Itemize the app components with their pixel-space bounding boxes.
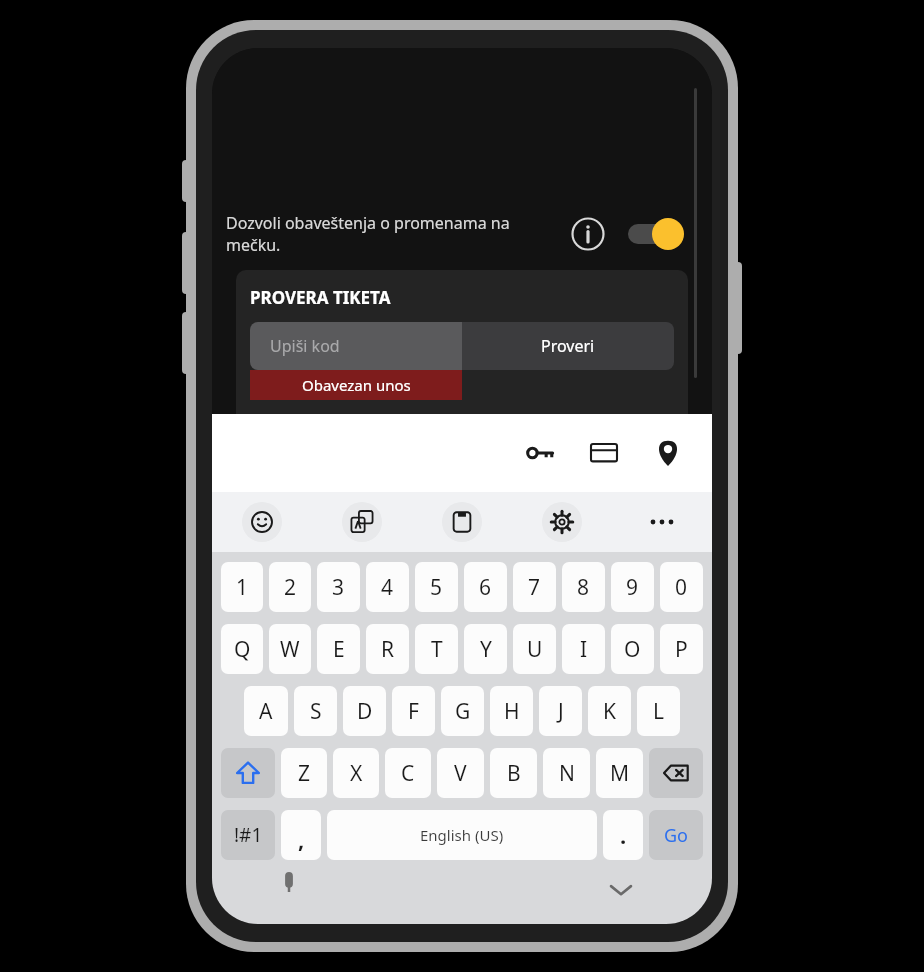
staticText: 2 <box>284 573 297 602</box>
staticText: 5 <box>430 573 443 602</box>
button[interactable]: 6 <box>464 562 507 612</box>
staticText: Z <box>298 759 311 788</box>
button[interactable]: Addresses <box>646 431 690 475</box>
button[interactable]: W <box>269 624 311 674</box>
button[interactable]: Z <box>281 748 327 798</box>
button[interactable]: Translate <box>342 502 382 542</box>
button[interactable]: Shift <box>221 748 275 798</box>
button[interactable]: Clipboard <box>442 502 482 542</box>
button[interactable]: O <box>611 624 654 674</box>
button[interactable]: , <box>281 810 321 860</box>
staticText: F <box>408 697 419 726</box>
staticText: I <box>580 635 588 664</box>
button[interactable]: N <box>543 748 590 798</box>
button[interactable]: T <box>415 624 458 674</box>
button[interactable]: X <box>333 748 379 798</box>
button[interactable]: 5 <box>415 562 458 612</box>
button[interactable]: L <box>637 686 680 736</box>
button[interactable]: Info <box>570 216 606 252</box>
staticText: 0 <box>675 573 688 602</box>
button[interactable]: Proveri <box>462 322 674 370</box>
staticText: S <box>310 697 322 726</box>
staticText: Q <box>234 635 251 664</box>
button[interactable]: J <box>539 686 582 736</box>
staticText: L <box>653 697 665 726</box>
button[interactable]: 2 <box>269 562 311 612</box>
staticText: Upiši kod <box>270 335 340 357</box>
staticText: 6 <box>479 573 492 602</box>
button[interactable]: !#1 <box>221 810 275 860</box>
staticText: E <box>333 635 345 664</box>
button[interactable]: Toggle notifications <box>626 217 686 251</box>
button[interactable]: Q <box>221 624 263 674</box>
button[interactable]: 4 <box>366 562 409 612</box>
staticText: . <box>620 820 627 850</box>
button[interactable]: U <box>513 624 556 674</box>
staticText: English (US) <box>420 825 504 845</box>
button[interactable]: Voice input <box>272 866 306 900</box>
button[interactable]: F <box>392 686 435 736</box>
staticText: G <box>455 697 471 726</box>
button[interactable]: M <box>596 748 643 798</box>
staticText: , <box>298 824 305 854</box>
staticText: C <box>401 759 415 788</box>
button[interactable]: 1 <box>221 562 263 612</box>
button[interactable]: . <box>603 810 643 860</box>
staticText: A <box>259 697 273 726</box>
button[interactable]: K <box>588 686 631 736</box>
staticText: 8 <box>577 573 590 602</box>
button[interactable]: Emoji <box>242 502 282 542</box>
button[interactable]: R <box>366 624 409 674</box>
staticText: 4 <box>381 573 394 602</box>
staticText: Obavezan unos <box>302 375 411 395</box>
staticText: PROVERA TIKETA <box>250 286 391 309</box>
staticText: 3 <box>332 573 345 602</box>
staticText: !#1 <box>234 822 263 848</box>
staticText: N <box>559 759 575 788</box>
staticText: K <box>603 697 616 726</box>
button[interactable]: H <box>490 686 533 736</box>
button[interactable]: Payment cards <box>582 431 626 475</box>
staticText: P <box>675 635 688 664</box>
staticText: Dozvoli obaveštenja o promenama na mečku… <box>226 212 556 256</box>
button[interactable]: Go <box>649 810 703 860</box>
staticText: R <box>381 635 395 664</box>
button[interactable]: Backspace <box>649 748 703 798</box>
staticText: J <box>558 697 564 726</box>
button[interactable]: P <box>660 624 703 674</box>
staticText: M <box>610 759 630 788</box>
button[interactable]: G <box>441 686 484 736</box>
staticText: Y <box>480 635 492 664</box>
button[interactable]: Passwords <box>518 431 562 475</box>
button[interactable]: D <box>343 686 386 736</box>
staticText: 7 <box>528 573 541 602</box>
button[interactable]: 0 <box>660 562 703 612</box>
button[interactable]: More <box>642 502 682 542</box>
staticText: 9 <box>626 573 639 602</box>
button[interactable]: C <box>385 748 431 798</box>
button[interactable]: 8 <box>562 562 605 612</box>
button[interactable]: 9 <box>611 562 654 612</box>
staticText: O <box>624 635 641 664</box>
staticText: 1 <box>236 573 249 602</box>
staticText: X <box>350 759 363 788</box>
button[interactable]: Hide keyboard <box>604 872 638 906</box>
button[interactable]: B <box>490 748 537 798</box>
button[interactable]: V <box>437 748 484 798</box>
button[interactable]: Y <box>464 624 507 674</box>
button[interactable]: 3 <box>317 562 360 612</box>
button[interactable]: Settings <box>542 502 582 542</box>
staticText: V <box>454 759 467 788</box>
button[interactable]: Upiši kod <box>250 322 462 370</box>
staticText: Proveri <box>541 335 595 357</box>
button[interactable]: S <box>294 686 337 736</box>
staticText: B <box>507 759 521 788</box>
staticText: H <box>504 697 520 726</box>
staticText: Go <box>664 823 688 848</box>
button[interactable]: E <box>317 624 360 674</box>
button[interactable]: A <box>244 686 288 736</box>
button[interactable]: I <box>562 624 605 674</box>
button[interactable]: 7 <box>513 562 556 612</box>
staticText: T <box>431 635 443 664</box>
button[interactable]: English (US) <box>327 810 597 860</box>
